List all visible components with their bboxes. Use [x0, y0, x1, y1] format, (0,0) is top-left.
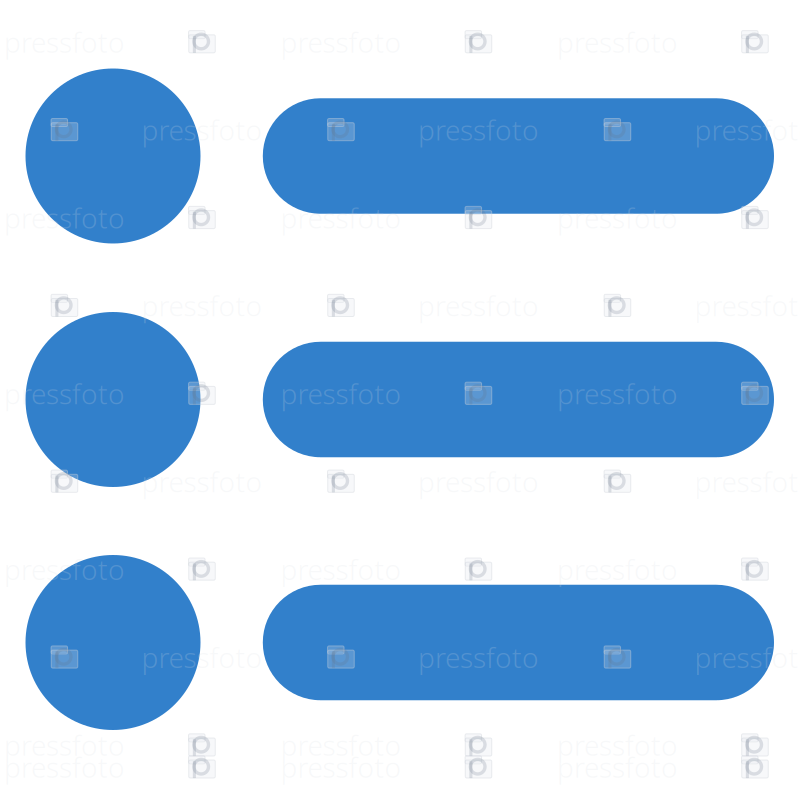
staticText: pressfoto — [280, 199, 401, 236]
staticText: pressfoto — [4, 726, 125, 764]
staticText: pressfoto — [694, 638, 800, 676]
staticText: pressfoto — [557, 199, 678, 236]
staticText: pressfoto — [141, 111, 262, 148]
staticText: pressfoto — [418, 638, 539, 676]
staticText: pressfoto — [280, 375, 401, 412]
staticText: pressfoto — [4, 375, 125, 412]
staticText: pressfoto — [4, 551, 125, 588]
button[interactable]: List item 2 — [25, 312, 774, 487]
button[interactable]: List item 3 — [25, 555, 774, 730]
staticText: pressfoto — [141, 463, 262, 500]
staticText: pressfoto — [557, 551, 678, 588]
staticText: pressfoto — [694, 111, 800, 148]
staticText: pressfoto — [418, 111, 539, 148]
button[interactable]: List item 1 — [25, 68, 774, 243]
staticText: pressfoto — [557, 375, 678, 412]
staticText: pressfoto — [4, 199, 125, 236]
staticText: pressfoto — [141, 638, 262, 676]
staticText: pressfoto — [141, 287, 262, 324]
staticText: pressfoto — [280, 551, 401, 588]
